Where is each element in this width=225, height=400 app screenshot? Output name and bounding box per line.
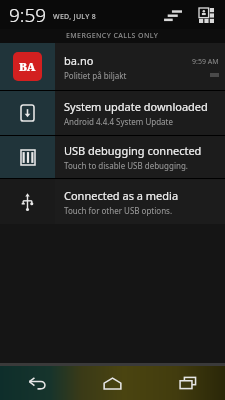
button[interactable]: BA: [0, 43, 225, 90]
staticText: USB debugging connected: [64, 143, 202, 158]
staticText: Android 4.4.4 System Update: [64, 116, 173, 127]
staticText: EMERGENCY CALLS ONLY: [66, 31, 159, 41]
staticText: Touch to disable USB debugging.: [64, 160, 188, 171]
button[interactable]: Recent apps: [150, 366, 225, 400]
staticText: ba.no: [64, 53, 94, 68]
staticText: BA: [19, 59, 36, 74]
button[interactable]: Back: [0, 366, 75, 400]
button[interactable]: Connected as a media device: [0, 179, 225, 224]
staticText: Touch for other USB options.: [64, 205, 173, 216]
button[interactable]: Home: [75, 366, 150, 400]
staticText: WED, JULY 8: [53, 12, 96, 22]
button[interactable]: System update downloaded: [0, 91, 225, 135]
staticText: Connected as a media device: [64, 188, 213, 203]
button[interactable]: USB debugging connected: [0, 136, 225, 178]
staticText: 9:59 AM: [192, 57, 219, 67]
staticText: Politiet på biljakt: [64, 70, 127, 81]
button[interactable]: Dismiss all notifications: [160, 2, 186, 28]
button[interactable]: Quick settings: [193, 2, 219, 28]
staticText: System update downloaded: [64, 99, 208, 114]
staticText: 9:59: [9, 2, 47, 28]
